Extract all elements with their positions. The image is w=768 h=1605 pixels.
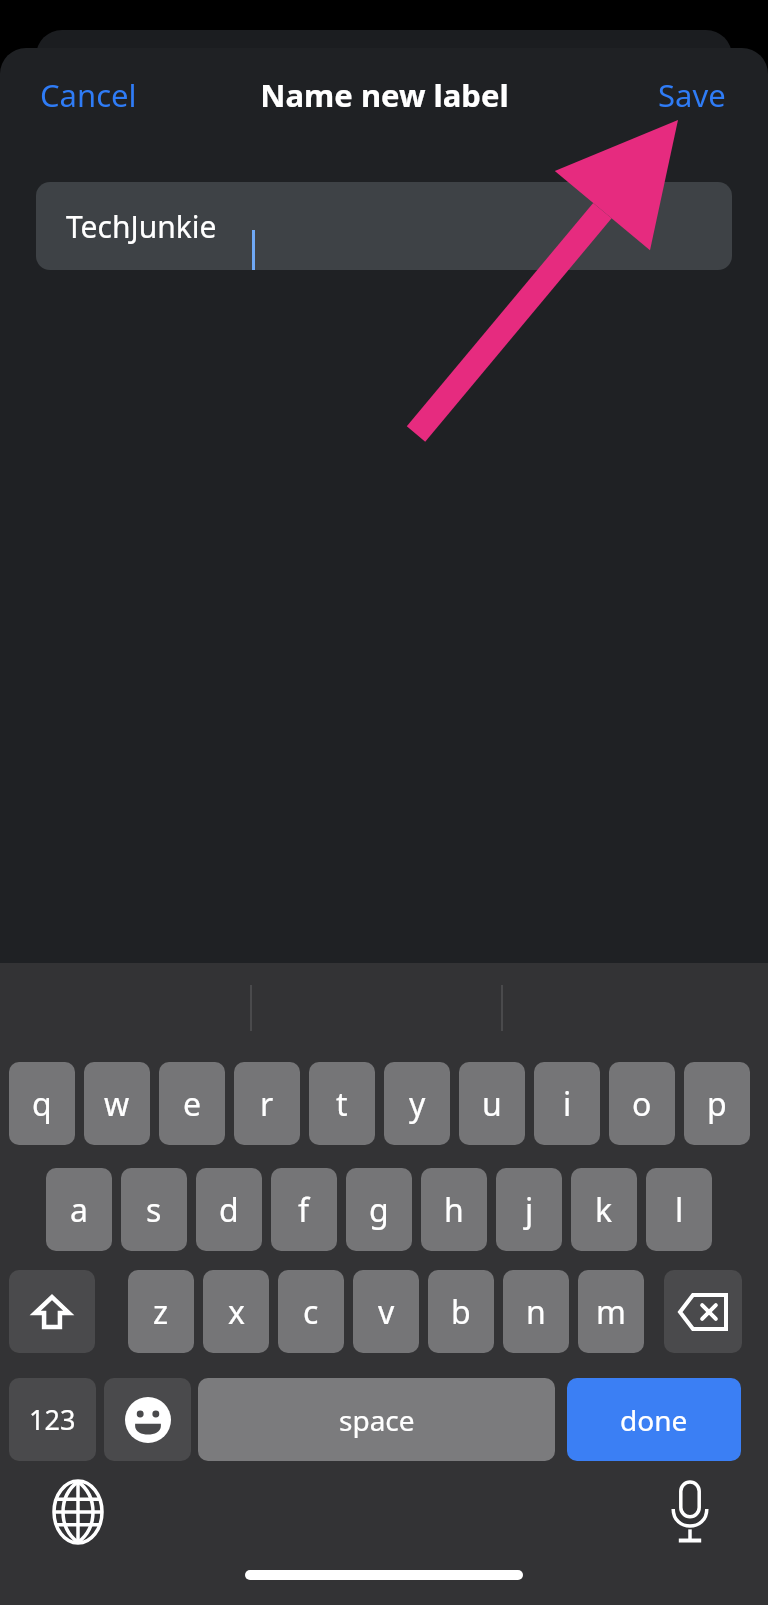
button[interactable]: f — [271, 1168, 337, 1251]
button[interactable]: space — [198, 1378, 555, 1461]
staticText: 123 — [29, 1401, 76, 1438]
button[interactable]: j — [496, 1168, 562, 1251]
button[interactable]: t — [309, 1062, 375, 1145]
staticText: done — [620, 1401, 688, 1439]
button[interactable]: p — [684, 1062, 750, 1145]
button[interactable]: n — [503, 1270, 569, 1353]
button[interactable]: c — [278, 1270, 344, 1353]
staticText: z — [153, 1290, 169, 1334]
staticText: d — [219, 1188, 239, 1232]
staticText: Save — [658, 74, 726, 116]
button[interactable]: u — [459, 1062, 525, 1145]
staticText: y — [409, 1082, 426, 1126]
button[interactable]: e — [159, 1062, 225, 1145]
staticText: r — [260, 1082, 274, 1126]
button[interactable]: Backspace — [664, 1270, 742, 1353]
button[interactable]: r — [234, 1062, 300, 1145]
button[interactable]: done — [567, 1378, 741, 1461]
staticText: t — [336, 1082, 348, 1126]
button[interactable]: w — [84, 1062, 150, 1145]
staticText: space — [339, 1401, 415, 1439]
button[interactable]: i — [534, 1062, 600, 1145]
staticText: s — [146, 1188, 162, 1232]
button[interactable]: y — [384, 1062, 450, 1145]
button[interactable]: q — [9, 1062, 75, 1145]
staticText: Cancel — [40, 74, 137, 116]
staticText: b — [451, 1290, 471, 1334]
staticText: j — [525, 1188, 534, 1232]
staticText: e — [183, 1082, 202, 1126]
button[interactable]: s — [121, 1168, 187, 1251]
staticText: Name new label — [260, 74, 509, 116]
button[interactable]: a — [46, 1168, 112, 1251]
staticText: TechJunkie — [66, 206, 217, 247]
button[interactable]: Cancel — [20, 66, 170, 124]
staticText: n — [526, 1290, 546, 1334]
staticText: a — [70, 1188, 88, 1232]
staticText: v — [378, 1290, 395, 1334]
button[interactable]: d — [196, 1168, 262, 1251]
button[interactable]: 123 — [9, 1378, 96, 1461]
staticText: p — [707, 1082, 727, 1126]
button[interactable]: Save — [598, 66, 748, 124]
button[interactable]: h — [421, 1168, 487, 1251]
staticText: o — [632, 1082, 652, 1126]
staticText: h — [444, 1188, 464, 1232]
staticText: f — [298, 1188, 310, 1232]
staticText: q — [32, 1082, 52, 1126]
button[interactable]: v — [353, 1270, 419, 1353]
staticText: k — [595, 1188, 613, 1232]
button[interactable]: l — [646, 1168, 712, 1251]
button[interactable]: o — [609, 1062, 675, 1145]
button[interactable]: Change keyboard language — [34, 1468, 122, 1556]
button[interactable]: g — [346, 1168, 412, 1251]
staticText: i — [563, 1082, 572, 1126]
button[interactable]: Emoji — [104, 1378, 191, 1461]
staticText: w — [104, 1082, 130, 1126]
button[interactable]: Dictate — [646, 1468, 734, 1556]
staticText: c — [303, 1290, 319, 1334]
button[interactable]: m — [578, 1270, 644, 1353]
staticText: m — [596, 1290, 626, 1334]
staticText: l — [675, 1188, 684, 1232]
button[interactable]: b — [428, 1270, 494, 1353]
button[interactable]: TechJunkie — [36, 182, 732, 270]
button[interactable]: Shift — [9, 1270, 95, 1353]
button[interactable]: x — [203, 1270, 269, 1353]
button[interactable]: z — [128, 1270, 194, 1353]
staticText: x — [228, 1290, 245, 1334]
staticText: g — [369, 1188, 389, 1232]
button[interactable]: k — [571, 1168, 637, 1251]
staticText: u — [482, 1082, 502, 1126]
